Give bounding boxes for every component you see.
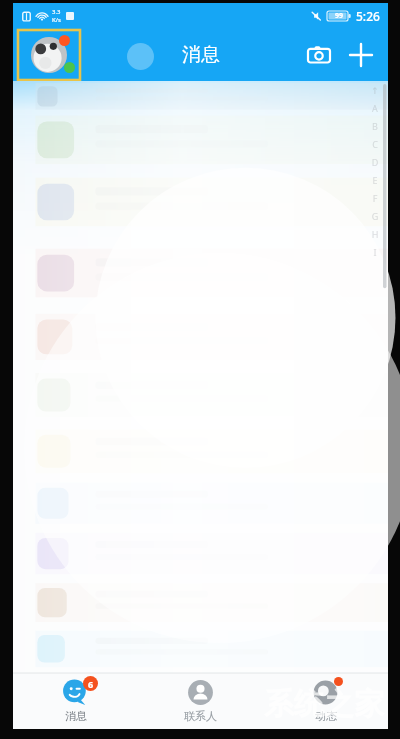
staticText: 6 (88, 678, 94, 690)
staticText: 99 (335, 11, 344, 21)
button[interactable]: 动态 (263, 673, 388, 729)
staticText: K/s (52, 16, 61, 24)
staticText: C (368, 138, 382, 150)
staticText: E (368, 174, 382, 186)
staticText: 消息 (182, 43, 220, 67)
button[interactable]: Add (342, 36, 380, 74)
staticText: 消息 (65, 709, 87, 723)
staticText: 联系人 (184, 709, 217, 723)
staticText: ↑ (368, 86, 382, 96)
staticText: 动态 (315, 709, 337, 723)
staticText: G (368, 210, 382, 222)
staticText: F (368, 192, 382, 204)
button[interactable]: 6 (13, 673, 138, 729)
staticText: B (368, 120, 382, 132)
staticText: H (368, 228, 382, 240)
staticText: A (368, 102, 382, 114)
staticText: 5:26 (356, 8, 380, 24)
staticText: 系统之家 (264, 685, 384, 723)
button[interactable]: Camera (300, 36, 338, 74)
staticText: I (368, 246, 382, 258)
button[interactable]: Profile (18, 30, 80, 80)
button[interactable]: 联系人 (138, 673, 263, 729)
staticText: D (368, 156, 382, 168)
staticText: 3.3 (52, 8, 61, 16)
